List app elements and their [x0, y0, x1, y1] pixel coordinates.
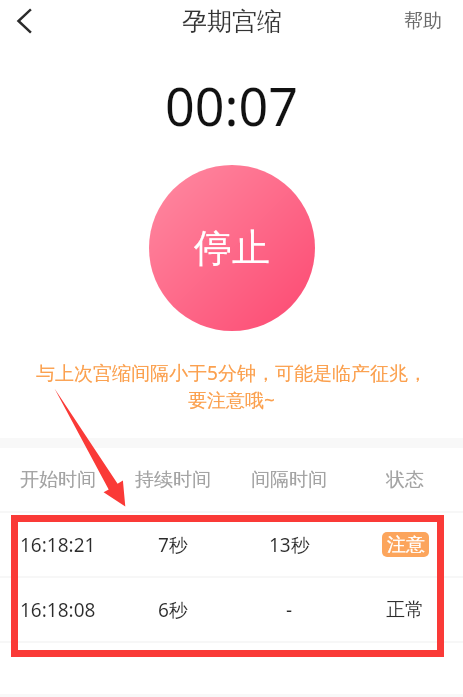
staticText: 帮助	[404, 9, 442, 33]
staticText: 6秒	[158, 597, 188, 623]
staticText: 正常	[386, 598, 424, 622]
staticText: 00:07	[165, 70, 298, 141]
button[interactable]: 16:18:08	[0, 578, 463, 641]
staticText: 孕期宫缩	[182, 6, 282, 37]
staticText: 持续时间	[135, 468, 211, 492]
staticText: 16:18:21	[20, 532, 96, 558]
button[interactable]: 16:18:21	[0, 513, 463, 576]
staticText: 状态	[386, 468, 424, 492]
button[interactable]: Back	[0, 0, 48, 41]
staticText: 注意	[387, 533, 425, 557]
staticText: 7秒	[158, 532, 188, 558]
staticText: 间隔时间	[251, 468, 327, 492]
staticText: 开始时间	[20, 468, 96, 492]
button[interactable]: 帮助	[383, 1, 463, 41]
staticText: 停止	[194, 224, 270, 272]
staticText: 与上次宫缩间隔小于5分钟，可能是临产征兆， 要注意哦~	[0, 360, 463, 413]
button[interactable]: 停止	[149, 165, 315, 331]
staticText: 16:18:08	[20, 597, 96, 623]
staticText: 13秒	[269, 532, 310, 558]
staticText: -	[286, 597, 293, 623]
